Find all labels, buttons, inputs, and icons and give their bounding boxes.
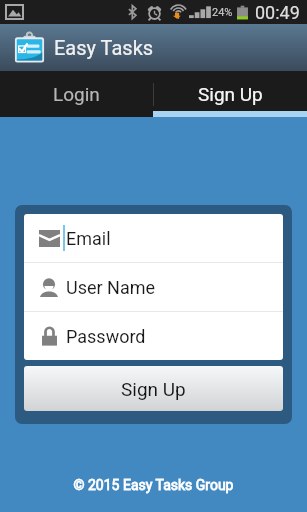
staticText: Sign Up [121, 378, 186, 400]
button[interactable]: Login [0, 71, 153, 117]
button[interactable]: Email [24, 214, 283, 262]
staticText: Password [66, 326, 146, 347]
staticText: 24% [212, 6, 233, 19]
button[interactable]: Sign Up [24, 366, 283, 411]
button[interactable]: Password [24, 312, 283, 360]
staticText: 00:49 [255, 2, 300, 23]
staticText: Email [66, 228, 111, 249]
staticText: User Name [66, 277, 156, 298]
staticText: Login [53, 83, 100, 105]
staticText: Sign Up [198, 83, 263, 105]
staticText: Easy Tasks [54, 36, 154, 59]
button[interactable]: User Name [24, 263, 283, 311]
button[interactable]: Sign Up [153, 71, 307, 117]
staticText: © 2015 Easy Tasks Group [0, 477, 307, 493]
